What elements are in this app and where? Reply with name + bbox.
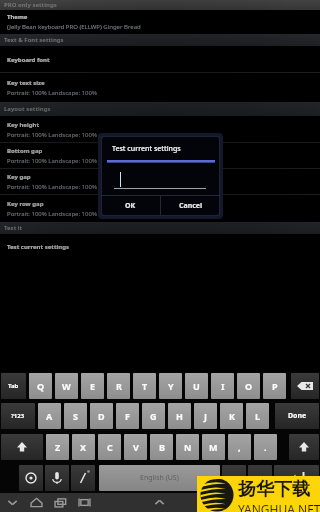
staticText: PRO only settings bbox=[4, 1, 57, 9]
button[interactable]: OK bbox=[101, 196, 160, 215]
staticText: M bbox=[209, 441, 218, 453]
button[interactable]: Key row gap bbox=[0, 195, 320, 222]
button[interactable]: Shift bbox=[289, 434, 319, 460]
button[interactable]: Done bbox=[275, 403, 319, 429]
staticText: Key gap bbox=[7, 173, 31, 181]
button[interactable]: C bbox=[98, 434, 121, 460]
button[interactable]: . bbox=[248, 465, 272, 491]
button[interactable]: Tab bbox=[1, 373, 26, 399]
staticText: . bbox=[264, 441, 267, 453]
button[interactable]: , bbox=[228, 434, 251, 460]
button[interactable]: R bbox=[107, 373, 130, 399]
button[interactable]: . bbox=[254, 434, 277, 460]
button[interactable]: H bbox=[168, 403, 191, 429]
button[interactable]: U bbox=[185, 373, 208, 399]
button[interactable]: Voice input bbox=[45, 465, 69, 491]
staticText: Tab bbox=[8, 382, 19, 390]
staticText: Test current settings bbox=[7, 243, 69, 251]
staticText: L bbox=[255, 410, 261, 422]
button[interactable]: G bbox=[142, 403, 165, 429]
staticText: Test current settings bbox=[112, 144, 181, 154]
staticText: C bbox=[107, 441, 113, 453]
staticText: Bottom gap bbox=[7, 147, 43, 155]
button[interactable]: Z bbox=[46, 434, 69, 460]
staticText: Layout settings bbox=[4, 105, 51, 113]
button[interactable]: L bbox=[246, 403, 269, 429]
staticText: 扬华下载 bbox=[238, 478, 310, 501]
staticText: (Jelly Bean keyboard PRO (ELLWP) Ginger … bbox=[7, 23, 141, 31]
staticText: Cancel bbox=[179, 201, 203, 211]
button[interactable]: V bbox=[124, 434, 147, 460]
button[interactable]: Key gap bbox=[0, 169, 320, 195]
staticText: , bbox=[238, 441, 241, 453]
staticText: , bbox=[233, 472, 236, 484]
button[interactable]: Backspace bbox=[291, 373, 319, 399]
button[interactable]: ?123 bbox=[1, 403, 35, 429]
staticText: Y bbox=[168, 380, 174, 392]
staticText: Key row gap bbox=[7, 200, 44, 208]
button[interactable]: Hide keyboard bbox=[147, 493, 171, 512]
staticText: English (US) bbox=[140, 473, 179, 483]
staticText: Text & Font settings bbox=[4, 36, 64, 44]
staticText: Portrait: 100% Landscape: 100% bbox=[7, 157, 97, 165]
button[interactable]: Cancel bbox=[161, 196, 220, 215]
button[interactable]: Key text size bbox=[0, 73, 320, 102]
staticText: ?123 bbox=[11, 412, 25, 420]
button[interactable]: B bbox=[150, 434, 173, 460]
staticText: W bbox=[62, 380, 71, 392]
staticText: Z bbox=[55, 441, 61, 453]
button[interactable]: Key height bbox=[0, 116, 320, 143]
button[interactable]: D bbox=[90, 403, 113, 429]
button[interactable]: N bbox=[176, 434, 199, 460]
button[interactable]: Bottom gap bbox=[0, 143, 320, 169]
button[interactable]: English (US) bbox=[99, 465, 220, 491]
staticText: N bbox=[184, 441, 192, 453]
button[interactable]: Recent apps bbox=[48, 493, 72, 512]
button[interactable]: Test current settings bbox=[0, 234, 320, 260]
staticText: Q bbox=[37, 380, 45, 392]
staticText: F bbox=[125, 410, 130, 422]
button[interactable]: F bbox=[116, 403, 139, 429]
staticText: H bbox=[176, 410, 183, 422]
staticText: O bbox=[245, 380, 253, 392]
button[interactable]: O bbox=[237, 373, 260, 399]
button[interactable]: Settings bbox=[19, 465, 43, 491]
button[interactable]: X bbox=[72, 434, 95, 460]
button[interactable]: W bbox=[55, 373, 78, 399]
staticText: P bbox=[272, 380, 278, 392]
staticText: I bbox=[221, 380, 225, 392]
staticText: U bbox=[193, 380, 200, 392]
button[interactable]: E bbox=[81, 373, 104, 399]
button[interactable]: Keyboard font bbox=[0, 46, 320, 73]
staticText: S bbox=[73, 410, 78, 422]
button[interactable]: Q bbox=[29, 373, 52, 399]
staticText: Portrait: 100% Landscape: 100% bbox=[7, 183, 97, 191]
staticText: E bbox=[90, 380, 96, 392]
staticText: V bbox=[133, 441, 139, 453]
button[interactable]: Enter bbox=[274, 465, 319, 491]
staticText: OK bbox=[125, 201, 136, 211]
staticText: K bbox=[229, 410, 235, 422]
staticText: Key text size bbox=[7, 79, 45, 87]
button[interactable]: Back bbox=[0, 493, 24, 512]
staticText: Done bbox=[288, 411, 307, 421]
button[interactable]: , bbox=[222, 465, 246, 491]
button[interactable]: Shift bbox=[1, 434, 43, 460]
button[interactable]: A bbox=[38, 403, 61, 429]
staticText: Portrait: 100% Landscape: 100% bbox=[7, 89, 97, 97]
button[interactable]: Y bbox=[159, 373, 182, 399]
button[interactable]: P bbox=[263, 373, 286, 399]
staticText: B bbox=[159, 441, 165, 453]
button[interactable]: Theme bbox=[0, 10, 320, 34]
button[interactable]: S bbox=[64, 403, 87, 429]
button[interactable]: T bbox=[133, 373, 156, 399]
button[interactable]: M bbox=[202, 434, 225, 460]
button[interactable]: Slash bbox=[71, 465, 95, 491]
staticText: YANGHUA.NET bbox=[238, 501, 320, 512]
button[interactable]: J bbox=[194, 403, 217, 429]
staticText: X bbox=[80, 441, 87, 453]
button[interactable]: I bbox=[211, 373, 234, 399]
button[interactable]: Home bbox=[24, 493, 48, 512]
button[interactable]: Fullscreen bbox=[72, 493, 96, 512]
button[interactable]: K bbox=[220, 403, 243, 429]
